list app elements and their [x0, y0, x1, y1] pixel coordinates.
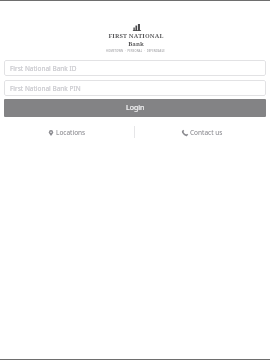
staticText: FIRST NATIONAL — [108, 32, 164, 40]
button[interactable]: Contact us — [135, 125, 270, 139]
staticText: HOMETOWN · PERSONAL · DEPENDABLE — [106, 49, 165, 53]
staticText: First National Bank ID — [10, 64, 77, 73]
other: Locations — [48, 130, 54, 136]
button[interactable]: First National Bank ID — [4, 60, 266, 76]
button[interactable]: First National Bank PIN — [4, 80, 266, 96]
button[interactable]: Locations — [0, 125, 134, 139]
staticText: First National Bank PIN — [10, 84, 81, 93]
staticText: Login — [126, 103, 145, 113]
other: Contact us — [182, 130, 188, 136]
staticText: Locations — [56, 128, 86, 137]
staticText: Contact us — [190, 128, 223, 137]
button[interactable]: Login — [4, 99, 266, 117]
staticText: Bank — [128, 40, 144, 48]
